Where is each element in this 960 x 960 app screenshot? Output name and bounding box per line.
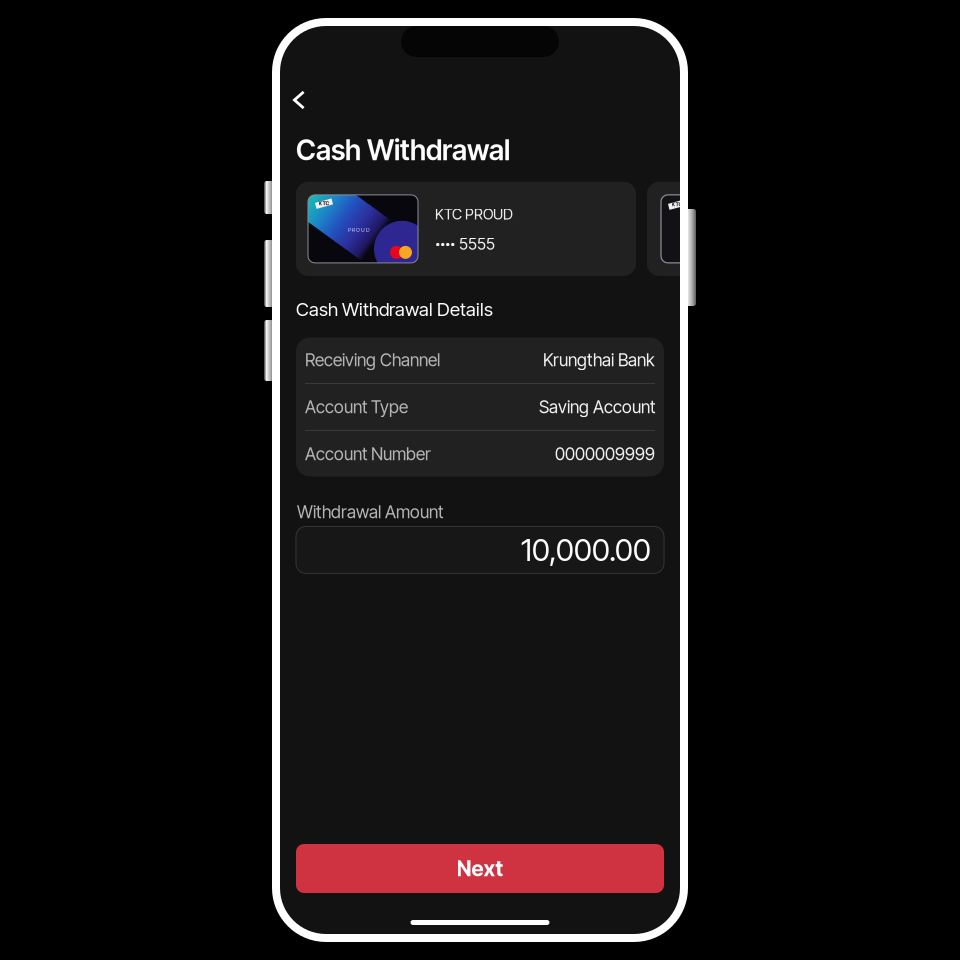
button[interactable]: Back [293, 85, 337, 115]
staticText: P R O U D [348, 227, 370, 233]
staticText: •••• 5555 [435, 234, 495, 253]
staticText: KTC [318, 200, 329, 207]
staticText: Cash Withdrawal [296, 133, 510, 167]
staticText: Next [456, 856, 503, 881]
staticText: Saving Account [539, 396, 655, 417]
staticText: Krungthai Bank [543, 349, 655, 370]
button[interactable]: Other card [647, 182, 960, 276]
staticText: Withdrawal Amount [297, 501, 443, 522]
staticText: KTC PROUD [435, 205, 513, 223]
staticText: 10,000.00 [521, 531, 651, 568]
staticText: KTC [671, 201, 682, 208]
staticText: Account Number [305, 443, 431, 464]
button[interactable]: Next [296, 844, 664, 893]
staticText: 0000009999 [555, 443, 655, 464]
staticText: Receiving Channel [305, 349, 440, 370]
staticText: Cash Withdrawal Details [296, 298, 493, 320]
staticText: Account Type [305, 396, 408, 417]
button[interactable]: P R O U D [296, 182, 636, 276]
